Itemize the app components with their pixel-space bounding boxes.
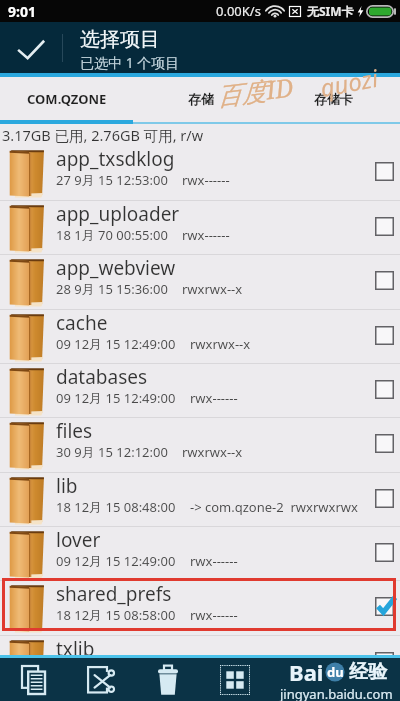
staticText: rwx------	[182, 171, 230, 189]
staticText: 0.00K/s	[216, 2, 261, 20]
button[interactable]: cache	[0, 310, 400, 364]
button[interactable]: lover	[0, 527, 400, 581]
staticText: 18 12月 15 08:58:00	[56, 606, 176, 624]
staticText: 18 12月 15 08:48:00	[56, 498, 176, 516]
button[interactable]	[368, 146, 400, 197]
staticText: 3.17GB 已用, 2.76GB 可用, r/w	[2, 125, 204, 145]
staticText: 30 9月 15 12:12:00	[56, 443, 168, 461]
button[interactable]: databases	[0, 364, 400, 418]
staticText: quozi	[317, 61, 381, 104]
button[interactable]: app_txsdklog	[0, 146, 400, 201]
staticText: rwxrwx--x	[182, 280, 243, 298]
staticText: 27 9月 15 12:53:00	[56, 171, 168, 189]
button[interactable]	[368, 473, 400, 524]
button[interactable]: More options	[201, 658, 268, 701]
staticText: rwx------	[190, 389, 238, 407]
button[interactable]: Delete	[134, 658, 201, 701]
staticText: 18 1月 70 00:55:00	[56, 226, 168, 244]
button[interactable]	[368, 636, 400, 687]
staticText: COM.QZONE	[27, 90, 107, 108]
staticText: shared_prefs	[56, 581, 172, 607]
staticText: rwx------	[182, 226, 230, 244]
staticText: -> com.qzone-2 rwxrwxrwx	[190, 498, 358, 516]
button[interactable]: COM.QZONE	[0, 77, 134, 121]
staticText: 经验	[349, 660, 387, 684]
button[interactable]: app_uploader	[0, 201, 400, 255]
staticText: app_txsdklog	[56, 146, 175, 172]
button[interactable]: Cut	[67, 658, 134, 701]
button[interactable]: Copy	[0, 658, 67, 701]
button[interactable]: app_webview	[0, 255, 400, 310]
button[interactable]: 存储卡	[267, 77, 400, 121]
button[interactable]: files	[0, 418, 400, 473]
button[interactable]: 存储	[134, 77, 267, 121]
staticText: 无SIM卡	[307, 3, 354, 19]
staticText: Bai	[289, 657, 324, 687]
staticText: lib	[56, 473, 78, 499]
button[interactable]	[368, 581, 400, 632]
staticText: rwxrwx--x	[190, 335, 251, 353]
staticText: 09 12月 15 12:49:00	[56, 389, 176, 407]
button[interactable]	[368, 364, 400, 415]
staticText: 百度ID	[214, 69, 296, 113]
staticText: app_webview	[56, 255, 176, 281]
button[interactable]	[368, 527, 400, 578]
staticText: 存储	[188, 91, 214, 107]
button[interactable]	[368, 310, 400, 361]
button[interactable]	[368, 201, 400, 252]
staticText: jingyan.baidu.com	[280, 685, 393, 701]
staticText: cache	[56, 310, 108, 336]
staticText: 已选中 1 个项目	[80, 53, 180, 72]
button[interactable]: Confirm selection	[0, 22, 62, 73]
staticText: app_uploader	[56, 201, 180, 227]
staticText: rwxrwx--x	[182, 443, 243, 461]
button[interactable]: lib	[0, 473, 400, 527]
staticText: files	[56, 418, 93, 444]
button[interactable]	[368, 255, 400, 306]
staticText: databases	[56, 364, 148, 390]
staticText: rwx------	[190, 606, 238, 624]
staticText: 09 12月 15 12:49:00	[56, 335, 176, 353]
staticText: 28 9月 15 15:36:00	[56, 280, 168, 298]
staticText: 存储卡	[314, 91, 353, 107]
staticText: 9:01	[8, 2, 36, 21]
staticText: txlib	[56, 636, 95, 662]
staticText: rwx------	[190, 552, 238, 570]
staticText: 选择项目	[80, 27, 160, 52]
button[interactable]	[368, 418, 400, 469]
button[interactable]: shared_prefs	[0, 581, 400, 636]
staticText: du	[327, 663, 344, 681]
button[interactable]: txlib	[0, 636, 400, 691]
staticText: lover	[56, 527, 101, 553]
staticText: 09 12月 15 12:49:00	[56, 552, 176, 570]
